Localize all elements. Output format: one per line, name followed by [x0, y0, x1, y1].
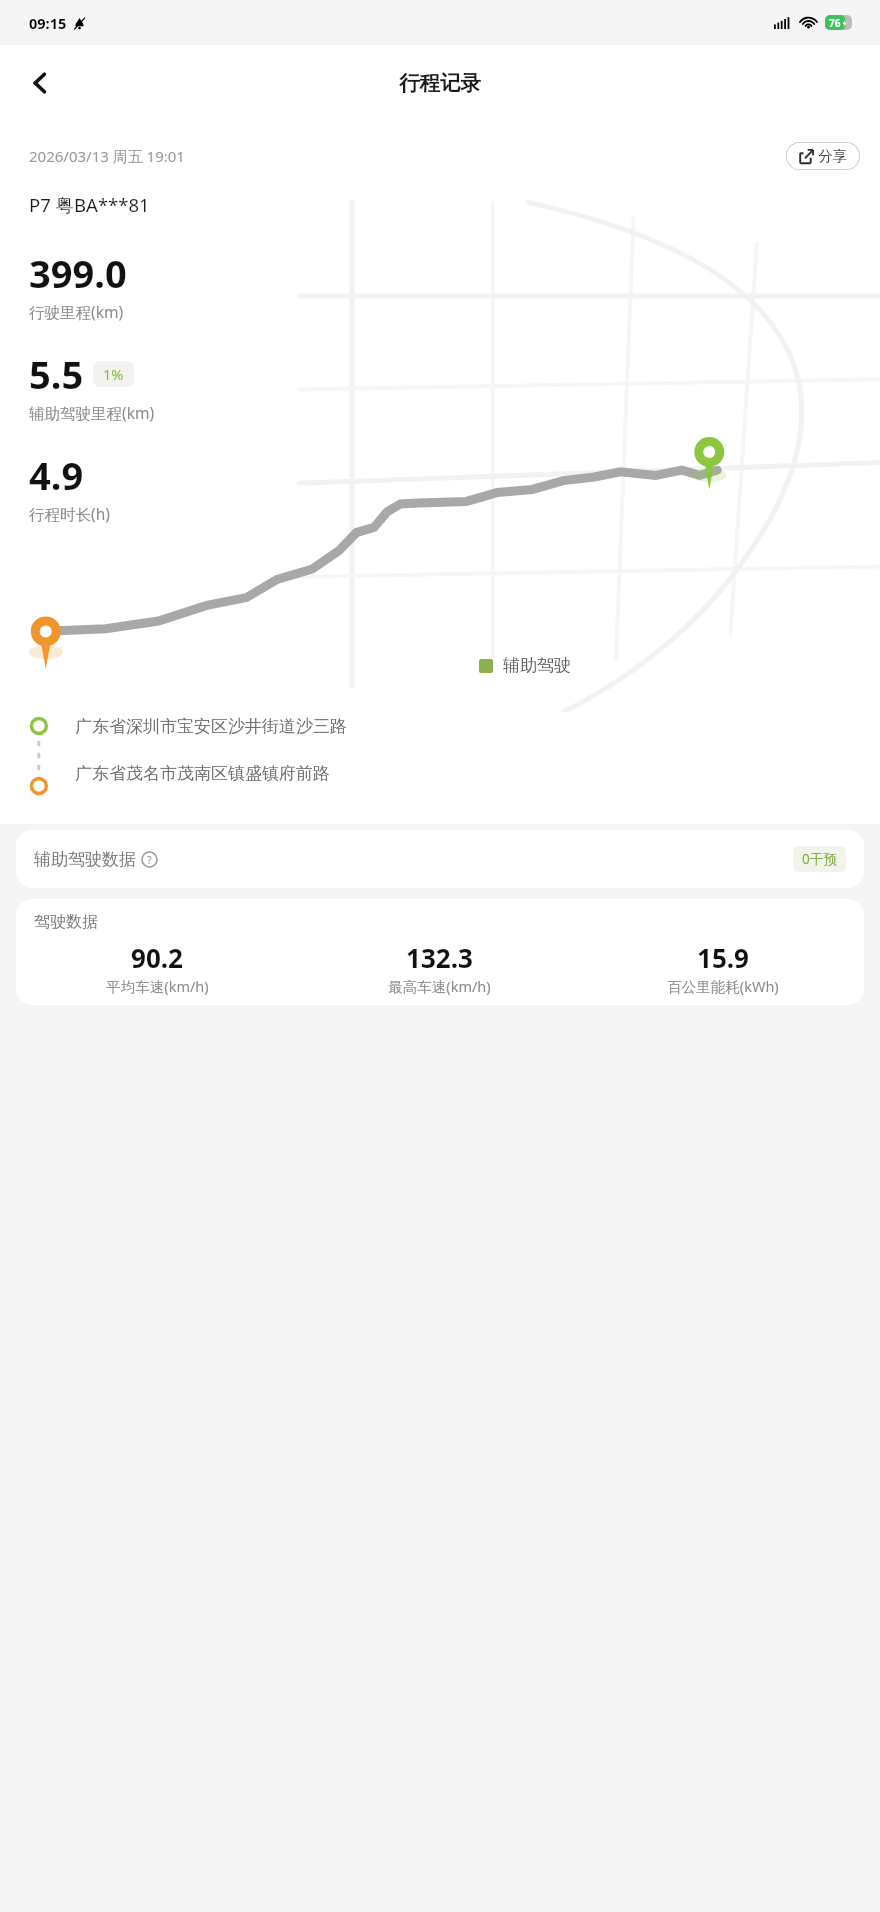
staticText: 百公里能耗(kWh): [667, 976, 779, 996]
staticText: 90.2: [131, 940, 183, 975]
staticText: 0干预: [802, 850, 837, 868]
staticText: 4.9: [29, 449, 84, 501]
staticText: 驾驶数据: [34, 912, 98, 932]
staticText: 辅助驾驶数据: [34, 849, 136, 870]
staticText: P7 粤BA***81: [29, 192, 150, 217]
staticText: 行程记录: [399, 70, 481, 96]
button[interactable]: Back: [14, 57, 66, 109]
staticText: 76: [829, 16, 841, 30]
staticText: 2026/03/13 周五 19:01: [29, 146, 185, 166]
staticText: 辅助驾驶: [503, 655, 571, 676]
staticText: 399.0: [29, 247, 127, 299]
staticText: 平均车速(km/h): [106, 976, 209, 996]
staticText: 广东省深圳市宝安区沙井街道沙三路: [75, 716, 347, 737]
staticText: 09:15: [29, 13, 67, 33]
staticText: ?: [147, 852, 152, 867]
staticText: 132.3: [406, 940, 473, 975]
staticText: 行程时长(h): [29, 503, 110, 524]
staticText: 辅助驾驶里程(km): [29, 402, 155, 423]
button[interactable]: 辅助驾驶数据: [16, 830, 864, 888]
staticText: 15.9: [697, 940, 749, 975]
staticText: 分享: [818, 147, 847, 165]
staticText: 行驶里程(km): [29, 301, 124, 322]
staticText: 1%: [103, 364, 124, 384]
staticText: 广东省茂名市茂南区镇盛镇府前路: [75, 763, 330, 784]
staticText: 最高车速(km/h): [388, 976, 491, 996]
button[interactable]: 分享: [786, 142, 860, 170]
staticText: 5.5: [29, 348, 84, 400]
